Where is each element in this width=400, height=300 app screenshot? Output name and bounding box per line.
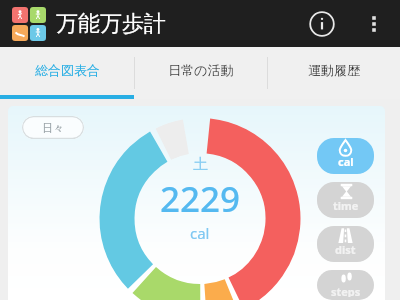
button[interactable]: cal	[317, 138, 374, 174]
button[interactable]: Information	[300, 2, 344, 46]
staticText: dist	[335, 242, 356, 257]
button[interactable]: dist	[317, 226, 374, 262]
button[interactable]: 運動履歴	[267, 47, 400, 99]
staticText: 日常の活動	[168, 62, 234, 78]
button[interactable]: 総合図表合	[0, 47, 134, 99]
staticText: cal	[338, 154, 354, 169]
staticText: steps	[331, 284, 361, 297]
button[interactable]: App icon	[12, 7, 46, 41]
staticText: time	[333, 198, 359, 213]
button[interactable]: More options	[356, 6, 392, 42]
staticText: 日々	[42, 121, 64, 135]
staticText: 2229	[160, 175, 241, 223]
button[interactable]: 日常の活動	[134, 47, 267, 99]
staticText: cal	[190, 223, 210, 243]
button[interactable]: steps	[317, 270, 374, 300]
button[interactable]: time	[317, 182, 374, 218]
staticText: 土	[193, 155, 208, 174]
button[interactable]: 日々	[22, 116, 84, 139]
staticText: 運動履歴	[308, 62, 360, 78]
staticText: 万能万歩計	[56, 10, 166, 38]
staticText: 総合図表合	[35, 62, 100, 78]
